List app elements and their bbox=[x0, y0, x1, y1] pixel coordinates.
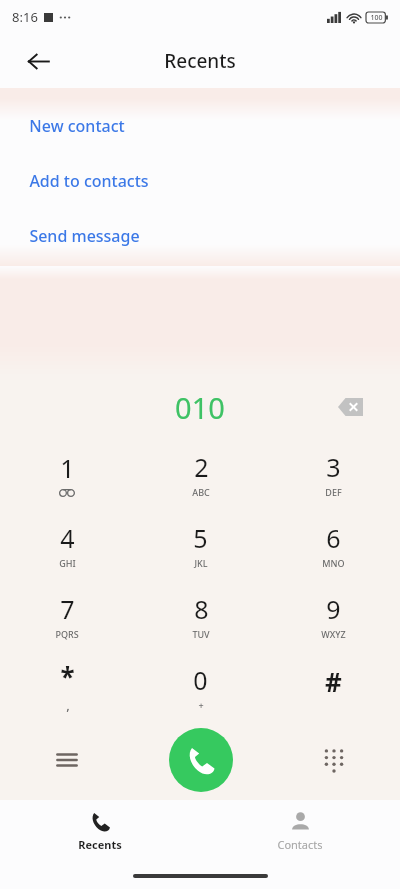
staticText: 010 bbox=[175, 388, 225, 427]
button[interactable]: Dialpad bbox=[267, 722, 400, 798]
button[interactable]: Back bbox=[14, 37, 62, 85]
staticText: MNO bbox=[322, 557, 345, 569]
button[interactable]: 1 bbox=[0, 438, 134, 509]
button[interactable]: 2 bbox=[134, 438, 267, 509]
staticText: 6 bbox=[326, 521, 341, 555]
staticText: PQRS bbox=[55, 628, 79, 640]
staticText: DEF bbox=[325, 486, 342, 498]
staticText: 1 bbox=[60, 451, 75, 485]
staticText: 3 bbox=[326, 450, 341, 484]
button[interactable]: Backspace bbox=[328, 385, 372, 429]
button[interactable]: Call log options bbox=[0, 722, 134, 798]
staticText: 9 bbox=[326, 592, 341, 626]
staticText: 0 bbox=[193, 663, 208, 697]
staticText: TUV bbox=[192, 628, 210, 640]
button[interactable]: * bbox=[0, 651, 134, 722]
button[interactable]: Add to contacts bbox=[0, 153, 400, 208]
button[interactable]: 6 bbox=[267, 509, 400, 580]
staticText: 2 bbox=[194, 450, 209, 484]
staticText: New contact bbox=[29, 115, 125, 137]
staticText: 7 bbox=[60, 592, 75, 626]
staticText: JKL bbox=[194, 557, 208, 569]
button[interactable]: New contact bbox=[0, 98, 400, 153]
staticText: 5 bbox=[193, 521, 208, 555]
staticText: GHI bbox=[59, 557, 76, 569]
staticText: + bbox=[198, 699, 204, 711]
button[interactable]: 4 bbox=[0, 509, 134, 580]
button[interactable]: 5 bbox=[134, 509, 267, 580]
button[interactable]: Recents bbox=[0, 800, 200, 862]
button[interactable]: 8 bbox=[134, 580, 267, 651]
staticText: * bbox=[60, 659, 75, 694]
staticText: Send message bbox=[29, 225, 140, 247]
staticText: 100 bbox=[370, 13, 383, 23]
button[interactable]: 0 bbox=[134, 651, 267, 722]
staticText: , bbox=[66, 696, 70, 714]
button[interactable]: Call bbox=[169, 728, 233, 792]
staticText: Recents bbox=[164, 48, 236, 74]
button[interactable]: 7 bbox=[0, 580, 134, 651]
button[interactable]: # bbox=[267, 651, 400, 722]
staticText: Contacts bbox=[277, 837, 323, 852]
button[interactable]: Contacts bbox=[200, 800, 400, 862]
staticText: ABC bbox=[192, 486, 210, 498]
button[interactable]: 3 bbox=[267, 438, 400, 509]
staticText: Recents bbox=[78, 837, 122, 852]
staticText: 4 bbox=[60, 521, 75, 555]
button[interactable]: Send message bbox=[0, 208, 400, 263]
staticText: 8:16 bbox=[12, 8, 38, 26]
staticText: # bbox=[325, 664, 342, 699]
staticText: WXYZ bbox=[321, 628, 346, 640]
button[interactable]: 9 bbox=[267, 580, 400, 651]
staticText: Add to contacts bbox=[29, 170, 149, 192]
staticText: 8 bbox=[194, 592, 209, 626]
